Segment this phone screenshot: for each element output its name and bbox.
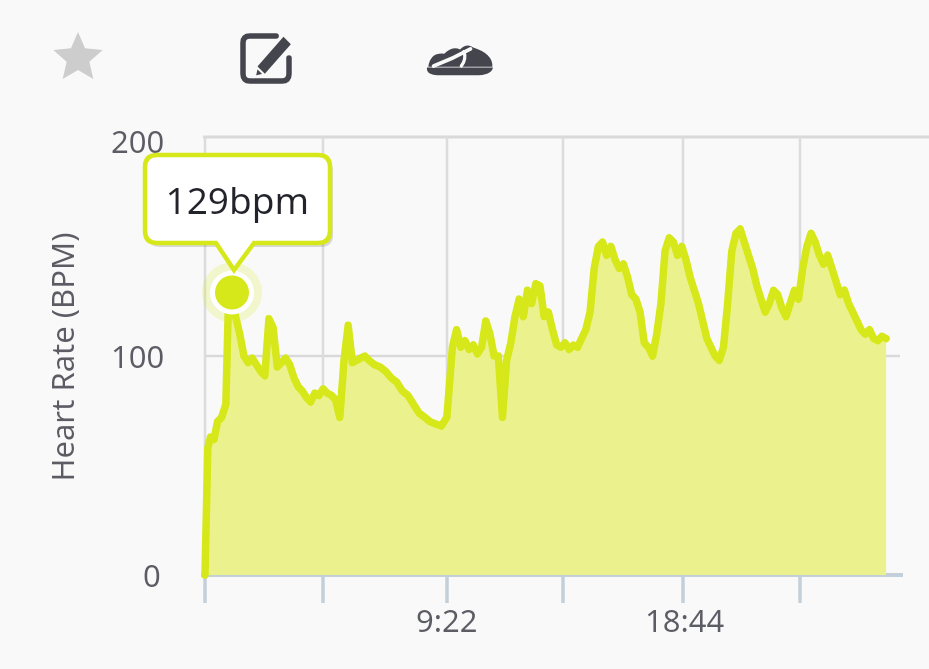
button[interactable]: Edit [232,26,300,92]
button[interactable]: Favourite [44,26,112,92]
button[interactable]: Workout [424,26,496,92]
